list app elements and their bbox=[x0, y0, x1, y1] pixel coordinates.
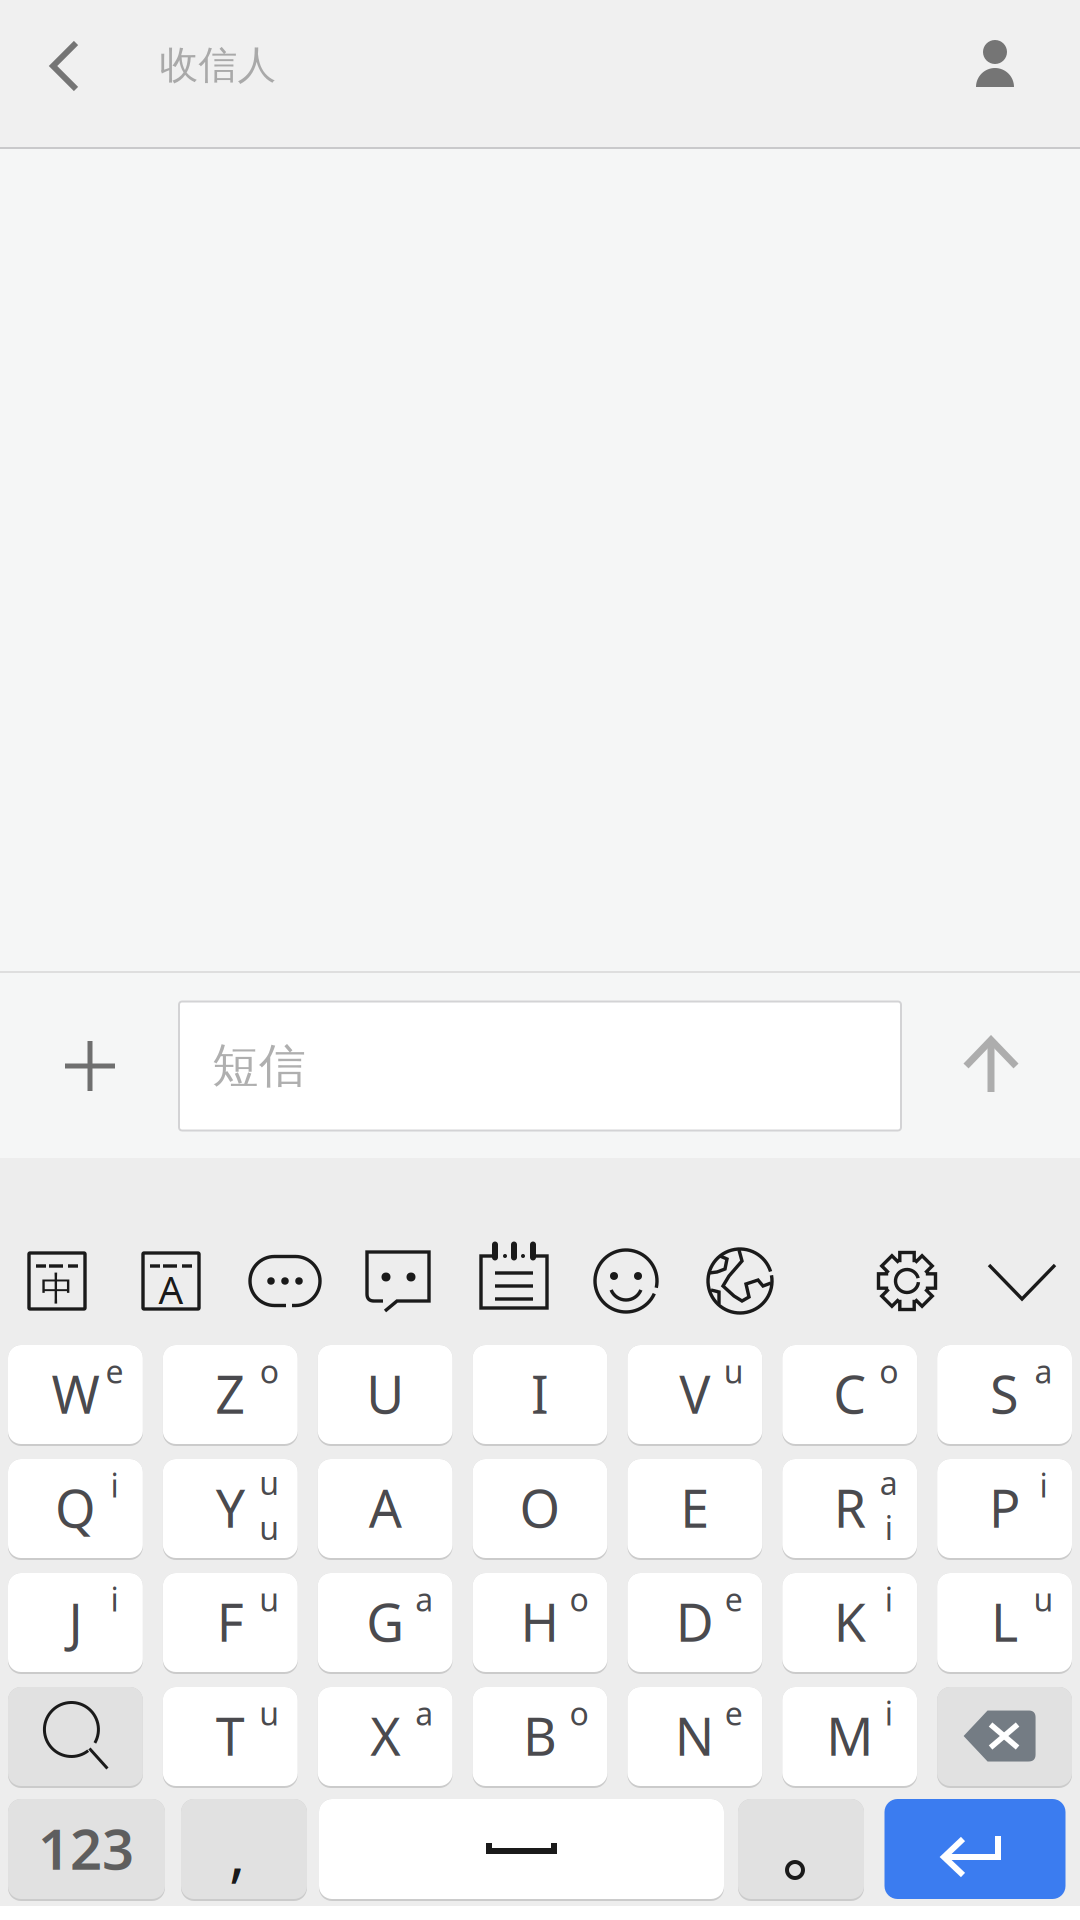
button[interactable]: Hide keyboard bbox=[0, 0, 1080, 1920]
staticText: i bbox=[110, 1578, 118, 1620]
staticText: i bbox=[885, 1578, 893, 1620]
staticText: F bbox=[217, 1587, 244, 1656]
button[interactable]: Y bbox=[0, 0, 1080, 1920]
button[interactable]: E bbox=[0, 0, 1080, 1920]
staticText: 收信人 bbox=[159, 41, 276, 89]
staticText: W bbox=[51, 1359, 99, 1428]
staticText: u bbox=[724, 1350, 744, 1392]
staticText: u bbox=[259, 1578, 279, 1620]
button[interactable]: G bbox=[0, 0, 1080, 1920]
button[interactable]: H bbox=[0, 0, 1080, 1920]
staticText: H bbox=[520, 1587, 559, 1656]
button[interactable]: R bbox=[0, 0, 1080, 1920]
button[interactable]: S bbox=[0, 0, 1080, 1920]
button[interactable]: Contacts bbox=[0, 0, 1080, 1920]
button[interactable]: V bbox=[0, 0, 1080, 1920]
staticText: o bbox=[569, 1692, 588, 1734]
staticText: O bbox=[519, 1473, 560, 1542]
staticText: K bbox=[834, 1587, 866, 1656]
button[interactable]: English input bbox=[0, 0, 1080, 1920]
button[interactable]: 123 bbox=[0, 0, 1080, 1920]
staticText: U bbox=[366, 1359, 404, 1428]
button[interactable]: L bbox=[0, 0, 1080, 1920]
staticText: u bbox=[259, 1461, 279, 1504]
button[interactable]: Return bbox=[0, 0, 1080, 1920]
button[interactable]: O bbox=[0, 0, 1080, 1920]
staticText: o bbox=[879, 1350, 898, 1392]
staticText: o bbox=[569, 1578, 588, 1620]
staticText: M bbox=[826, 1701, 873, 1770]
staticText: i bbox=[885, 1506, 893, 1549]
staticText: J bbox=[68, 1587, 82, 1656]
staticText: P bbox=[989, 1473, 1020, 1542]
button[interactable]: Keyboard settings bbox=[0, 0, 1080, 1920]
button[interactable]: B bbox=[0, 0, 1080, 1920]
staticText: I bbox=[531, 1359, 549, 1428]
button[interactable]: Chinese input bbox=[0, 0, 1080, 1920]
button[interactable]: Notes bbox=[0, 0, 1080, 1920]
staticText: , bbox=[229, 1811, 245, 1893]
button[interactable]: D bbox=[0, 0, 1080, 1920]
button[interactable]: T bbox=[0, 0, 1080, 1920]
staticText: E bbox=[680, 1473, 709, 1542]
button[interactable]: U bbox=[0, 0, 1080, 1920]
button[interactable]: Chat phrases bbox=[0, 0, 1080, 1920]
button[interactable]: I bbox=[0, 0, 1080, 1920]
button[interactable]: Add attachment bbox=[0, 0, 1080, 1920]
button[interactable]: K bbox=[0, 0, 1080, 1920]
staticText: Z bbox=[215, 1359, 245, 1428]
staticText: G bbox=[366, 1587, 404, 1656]
staticText: L bbox=[991, 1587, 1018, 1656]
button[interactable]: Space bbox=[0, 0, 1080, 1920]
button[interactable]: Message text field bbox=[0, 0, 1080, 1920]
button[interactable]: A bbox=[0, 0, 1080, 1920]
staticText: 短信 bbox=[212, 1037, 306, 1095]
button[interactable]: Emoji bbox=[0, 0, 1080, 1920]
button[interactable]: Change language bbox=[0, 0, 1080, 1920]
button[interactable]: J bbox=[0, 0, 1080, 1920]
staticText: e bbox=[725, 1578, 743, 1620]
staticText: Q bbox=[55, 1473, 96, 1542]
button[interactable]: Voice input bbox=[0, 0, 1080, 1920]
staticText: u bbox=[259, 1506, 279, 1549]
button[interactable]: X bbox=[0, 0, 1080, 1920]
staticText: X bbox=[370, 1701, 400, 1770]
staticText: R bbox=[834, 1473, 866, 1542]
staticText: i bbox=[110, 1464, 118, 1506]
staticText: i bbox=[885, 1692, 893, 1734]
staticText: S bbox=[990, 1359, 1019, 1428]
button[interactable]: Z bbox=[0, 0, 1080, 1920]
button[interactable]: Send bbox=[0, 0, 1080, 1920]
staticText: 123 bbox=[38, 1811, 134, 1885]
staticText: 中 bbox=[40, 1268, 73, 1309]
button[interactable]: C bbox=[0, 0, 1080, 1920]
button[interactable]: W bbox=[0, 0, 1080, 1920]
staticText: o bbox=[260, 1350, 279, 1392]
button[interactable]: Comma bbox=[0, 0, 1080, 1920]
staticText: e bbox=[105, 1350, 123, 1392]
staticText: e bbox=[725, 1692, 743, 1734]
staticText: u bbox=[1034, 1578, 1054, 1620]
staticText: C bbox=[833, 1359, 866, 1428]
button[interactable]: Q bbox=[0, 0, 1080, 1920]
staticText: A bbox=[158, 1263, 183, 1315]
staticText: u bbox=[259, 1692, 279, 1734]
staticText: D bbox=[676, 1587, 714, 1656]
staticText: a bbox=[1035, 1350, 1053, 1392]
button[interactable]: Period bbox=[0, 0, 1080, 1920]
staticText: Y bbox=[216, 1473, 245, 1542]
staticText: B bbox=[523, 1701, 557, 1770]
staticText: N bbox=[675, 1701, 715, 1770]
staticText: V bbox=[679, 1359, 710, 1428]
button[interactable]: Search bbox=[0, 0, 1080, 1920]
button[interactable]: M bbox=[0, 0, 1080, 1920]
button[interactable]: P bbox=[0, 0, 1080, 1920]
button[interactable]: F bbox=[0, 0, 1080, 1920]
button[interactable]: Back bbox=[0, 0, 1080, 1920]
button[interactable]: Delete bbox=[0, 0, 1080, 1920]
staticText: a bbox=[880, 1461, 898, 1504]
staticText: T bbox=[216, 1701, 245, 1770]
staticText: a bbox=[415, 1578, 433, 1620]
staticText: a bbox=[415, 1692, 433, 1734]
button[interactable]: N bbox=[0, 0, 1080, 1920]
